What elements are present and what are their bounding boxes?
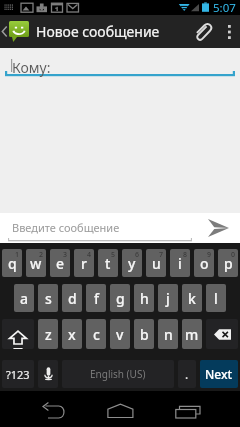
button[interactable]: k <box>182 284 202 312</box>
button[interactable]: More options <box>218 15 240 48</box>
staticText: 9 <box>207 250 212 260</box>
button[interactable]: j <box>158 284 178 312</box>
button[interactable]: p <box>218 249 238 277</box>
button[interactable]: i <box>170 249 190 277</box>
button[interactable]: Voice input <box>38 360 58 388</box>
staticText: y <box>128 254 136 273</box>
button[interactable]: z <box>38 319 58 349</box>
staticText: x <box>68 325 76 344</box>
staticText: Введите сообщение <box>12 220 120 235</box>
staticText: m <box>185 325 199 344</box>
staticText: t <box>105 254 111 273</box>
staticText: j <box>166 289 170 308</box>
button[interactable]: y <box>122 249 142 277</box>
staticText: s <box>45 289 52 308</box>
staticText: i <box>178 254 182 273</box>
button[interactable]: l <box>206 284 226 312</box>
staticText: 0 <box>231 250 236 260</box>
button[interactable]: Symbols <box>2 360 34 388</box>
staticText: g <box>116 289 125 308</box>
staticText: f <box>94 289 99 308</box>
button[interactable]: q <box>2 249 22 277</box>
button[interactable]: c <box>86 319 106 349</box>
staticText: o <box>200 254 209 273</box>
button[interactable]: Next <box>200 360 238 388</box>
staticText: Next <box>205 366 233 382</box>
button[interactable]: Home <box>92 391 148 427</box>
staticText: 1 <box>15 250 20 260</box>
button[interactable]: d <box>62 284 82 312</box>
staticText: w <box>30 254 42 273</box>
staticText: l <box>214 289 218 308</box>
staticText: . <box>185 366 189 382</box>
button[interactable]: t <box>98 249 118 277</box>
staticText: 7 <box>159 250 164 260</box>
button[interactable]: Back <box>26 391 82 427</box>
button[interactable]: b <box>134 319 154 349</box>
staticText: r <box>81 254 87 273</box>
staticText: 3 <box>63 250 68 260</box>
button[interactable]: a <box>14 284 34 312</box>
staticText: Кому: <box>12 58 51 77</box>
button[interactable]: g <box>110 284 130 312</box>
staticText: Новое сообщение <box>36 22 160 41</box>
button[interactable]: Navigate up <box>0 15 160 48</box>
staticText: a <box>20 289 29 308</box>
staticText: q <box>8 254 17 273</box>
button[interactable]: s <box>38 284 58 312</box>
staticText: ?123 <box>6 367 30 382</box>
staticText: 4 <box>87 250 92 260</box>
button[interactable]: Period <box>178 360 196 388</box>
button[interactable]: Space <box>62 360 174 388</box>
staticText: n <box>164 325 173 344</box>
button[interactable]: m <box>182 319 202 349</box>
button[interactable]: v <box>110 319 130 349</box>
button[interactable]: Send <box>196 213 240 243</box>
button[interactable]: Recent apps <box>160 391 216 427</box>
button[interactable]: n <box>158 319 178 349</box>
button[interactable]: e <box>50 249 70 277</box>
staticText: c <box>93 325 100 344</box>
button[interactable]: u <box>146 249 166 277</box>
staticText: p <box>224 254 233 273</box>
staticText: English (US) <box>90 367 146 381</box>
staticText: h <box>140 289 149 308</box>
staticText: 5:07 <box>213 0 236 15</box>
button[interactable]: Shift <box>2 319 34 349</box>
staticText: 2 <box>39 250 44 260</box>
button[interactable]: w <box>26 249 46 277</box>
staticText: 6 <box>135 250 140 260</box>
staticText: u <box>152 254 161 273</box>
staticText: b <box>140 325 149 344</box>
staticText: 5 <box>111 250 116 260</box>
button[interactable]: Backspace <box>206 319 238 349</box>
staticText: v <box>116 325 124 344</box>
staticText: k <box>188 289 196 308</box>
staticText: z <box>45 325 52 344</box>
button[interactable]: h <box>134 284 154 312</box>
button[interactable]: o <box>194 249 214 277</box>
staticText: 8 <box>183 250 188 260</box>
button[interactable]: f <box>86 284 106 312</box>
staticText: e <box>56 254 65 273</box>
button[interactable]: r <box>74 249 94 277</box>
button[interactable]: Attach <box>186 15 218 48</box>
button[interactable]: x <box>62 319 82 349</box>
staticText: d <box>68 289 77 308</box>
